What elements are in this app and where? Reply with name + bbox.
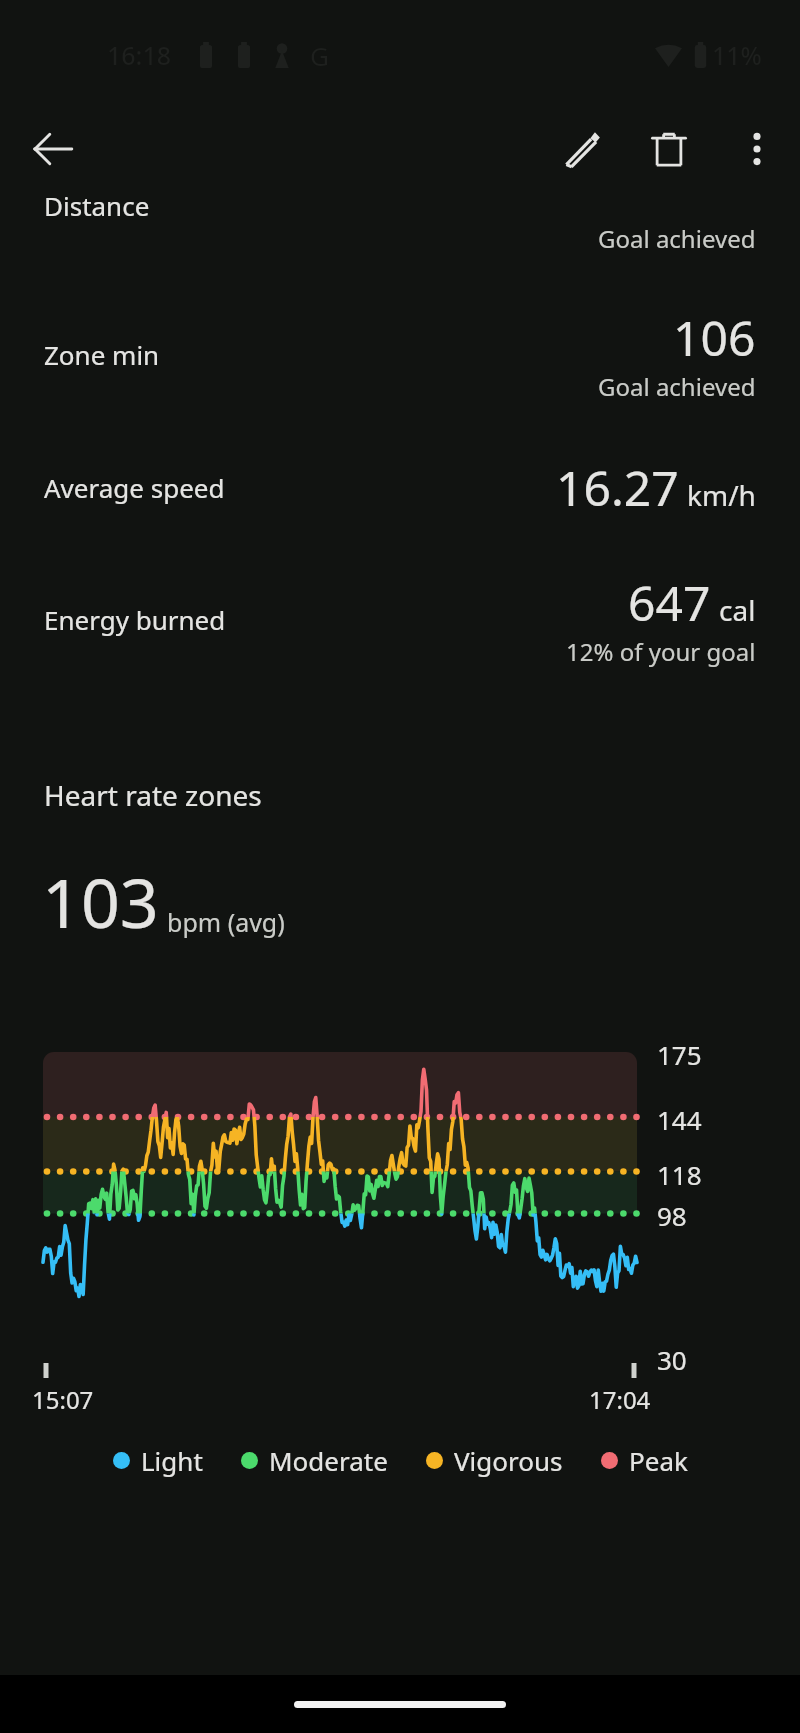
staticText: cal [719,591,756,629]
staticText: 17:04 [589,1383,651,1416]
staticText: Moderate [269,1443,388,1478]
staticText: Peak [629,1443,688,1478]
staticText: Heart rate zones [44,776,262,814]
staticText: 11% [712,38,762,72]
staticText: bpm (avg) [167,905,285,939]
button[interactable]: Peak [601,1443,688,1478]
button[interactable]: Zone min [0,305,800,403]
staticText: 15:07 [32,1383,94,1416]
staticText: Goal achieved [598,370,756,403]
button[interactable]: More options [722,114,792,184]
staticText: 144 [657,1102,702,1137]
button[interactable]: Distance [0,192,800,272]
button[interactable]: Edit [547,114,617,184]
staticText: 30 [657,1342,687,1377]
staticText: 98 [657,1198,687,1233]
staticText: Zone min [44,337,598,372]
button[interactable]: Back [18,114,88,184]
button[interactable]: Light [113,1443,203,1478]
button[interactable]: Moderate [241,1443,388,1478]
staticText: 175 [657,1037,702,1072]
button[interactable]: Vigorous [426,1443,563,1478]
button[interactable]: Energy burned [0,570,800,668]
staticText: Average speed [44,470,556,505]
staticText: 118 [657,1157,702,1192]
staticText: 106 [673,305,756,370]
staticText: Light [141,1443,203,1478]
staticText: km/h [687,476,756,514]
staticText: 16.27 [556,455,679,520]
staticText: Energy burned [44,602,566,637]
staticText: Distance [44,188,150,223]
staticText: Goal achieved [598,222,756,255]
staticText: 103 [42,855,159,948]
staticText: 12% of your goal [566,635,756,668]
staticText: G [310,38,329,73]
button[interactable]: Delete [634,114,704,184]
staticText: 16:18 [107,38,172,72]
staticText: Vigorous [454,1443,563,1478]
button[interactable]: Average speed [0,455,800,520]
staticText: 647 [628,570,711,635]
